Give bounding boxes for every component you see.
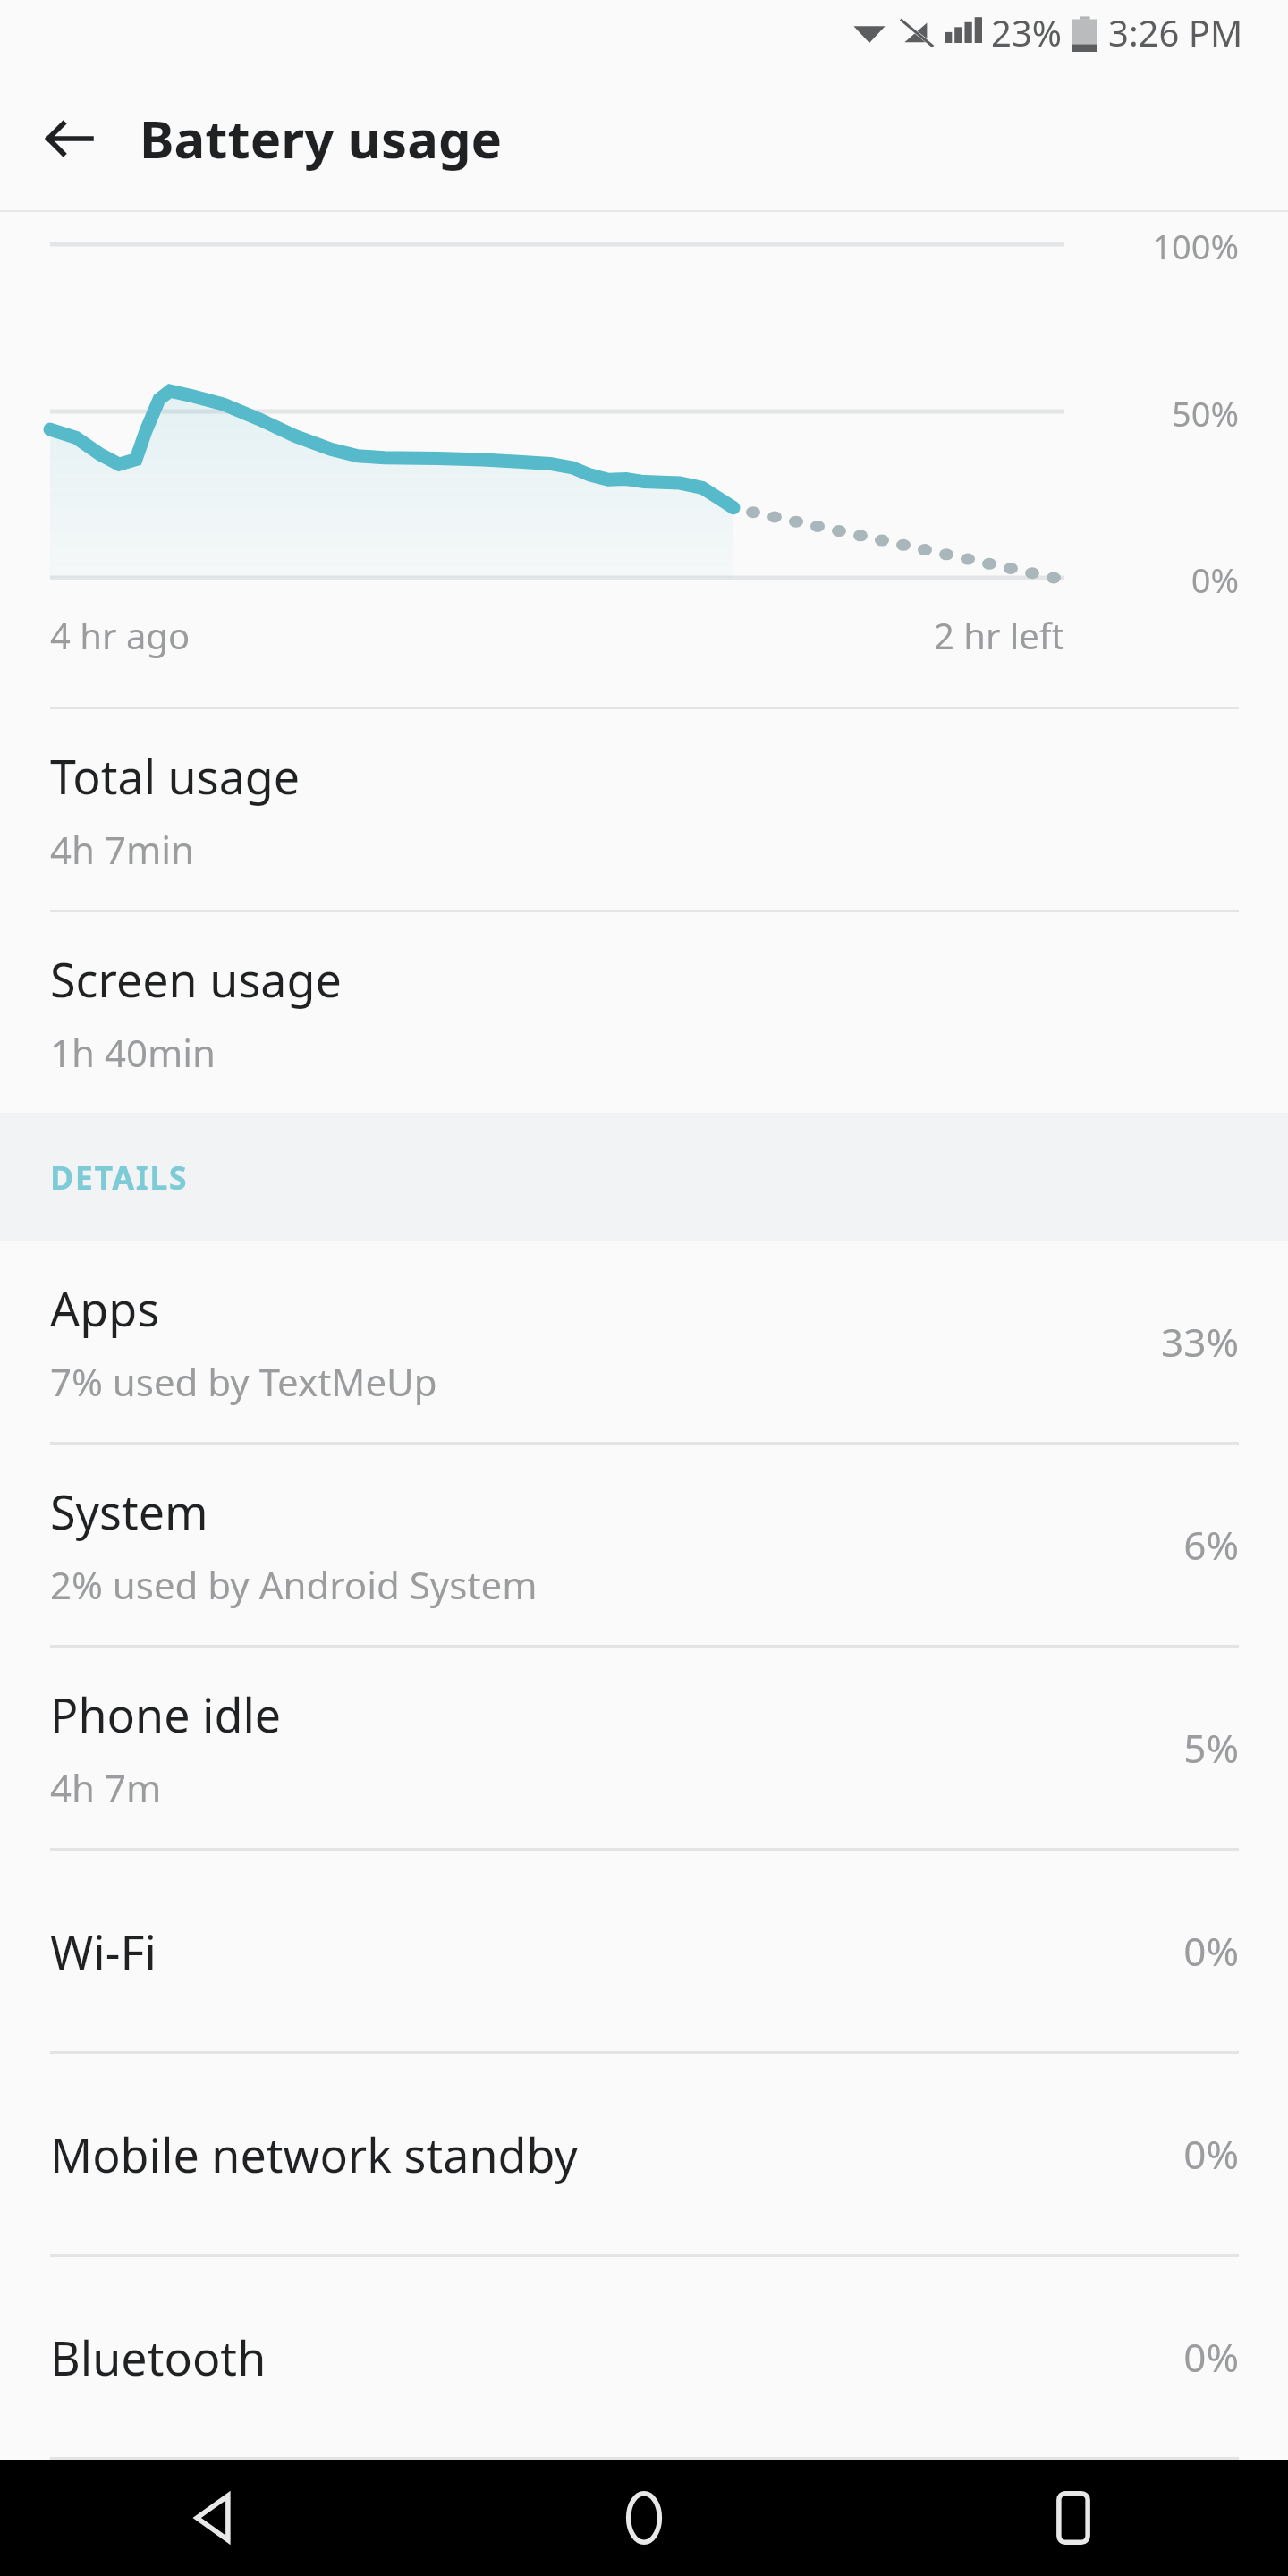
button[interactable]: Back (23, 92, 116, 185)
staticText: 4 hr ago (50, 611, 191, 659)
staticText: 4h 7min (50, 824, 194, 875)
staticText: 100% (1152, 223, 1239, 269)
staticText: 33% (1161, 1315, 1239, 1368)
staticText: 3:26 PM (1108, 8, 1243, 56)
staticText: 0% (1183, 2127, 1239, 2181)
staticText: 1h 40min (50, 1027, 216, 1078)
staticText: 0% (1191, 556, 1239, 603)
button[interactable]: Total usage (0, 709, 1288, 910)
staticText: Bluetooth (50, 2326, 267, 2389)
button[interactable]: Back (161, 2464, 268, 2572)
staticText: 0% (1183, 1924, 1239, 1978)
staticText: DETAILS (50, 1156, 189, 1199)
button[interactable]: Wi-Fi (0, 1851, 1288, 2051)
staticText: Battery usage (140, 103, 503, 174)
staticText: Mobile network standby (50, 2123, 579, 2186)
staticText: 2% used by Android System (50, 1559, 538, 1610)
button[interactable]: Phone idle (0, 1648, 1288, 1848)
button[interactable]: Recent apps (1020, 2464, 1127, 2572)
staticText: Total usage (50, 744, 301, 808)
staticText: 4h 7m (50, 1762, 162, 1813)
staticText: 2 hr left (934, 611, 1064, 659)
button[interactable]: Home (590, 2464, 698, 2572)
button[interactable]: Apps (0, 1241, 1288, 1442)
staticText: 6% (1183, 1518, 1239, 1572)
button[interactable]: System (0, 1445, 1288, 1645)
staticText: 7% used by TextMeUp (50, 1356, 437, 1407)
staticText: Apps (50, 1276, 160, 1340)
staticText: Phone idle (50, 1682, 282, 1746)
button[interactable]: Mobile network standby (0, 2054, 1288, 2254)
button[interactable]: Bluetooth (0, 2257, 1288, 2457)
staticText: 0% (1183, 2330, 1239, 2384)
staticText: 5% (1183, 1721, 1239, 1775)
button[interactable]: Screen usage (0, 912, 1288, 1113)
staticText: System (50, 1479, 208, 1543)
staticText: Screen usage (50, 947, 342, 1011)
staticText: 50% (1171, 390, 1239, 436)
staticText: Wi-Fi (50, 1919, 157, 1983)
staticText: 23% (991, 8, 1062, 56)
